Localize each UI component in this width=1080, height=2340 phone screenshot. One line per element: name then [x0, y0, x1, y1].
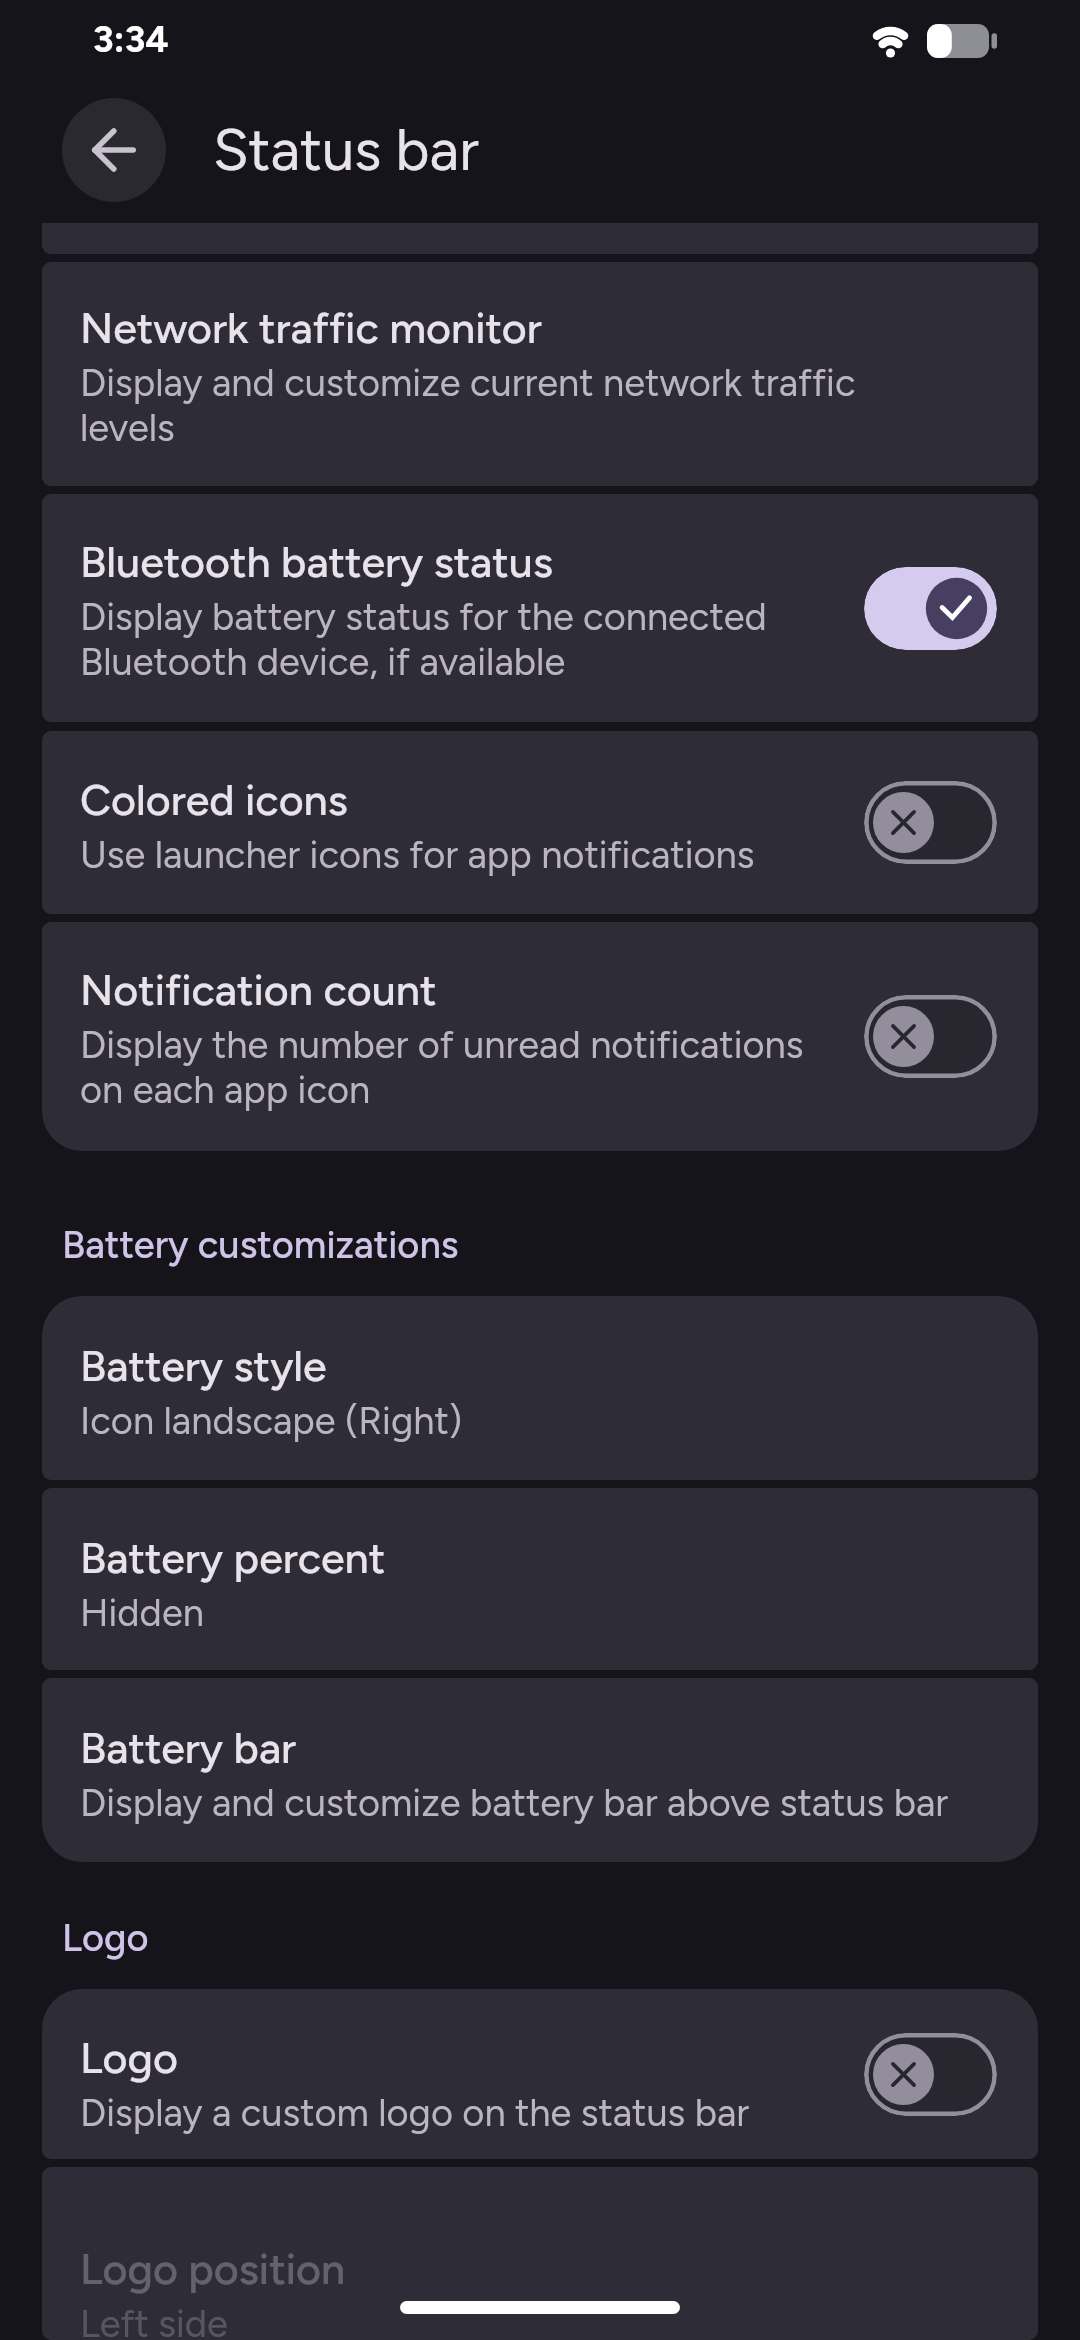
- staticText: Hidden: [80, 1590, 204, 1636]
- staticText: Battery bar: [80, 1722, 297, 1774]
- button[interactable]: Bluetooth battery status: [42, 494, 1038, 722]
- staticText: Bluetooth battery status: [80, 536, 553, 588]
- button[interactable]: Logo: [42, 1989, 1038, 2159]
- button[interactable]: Battery bar: [42, 1678, 1038, 1862]
- staticText: Display a custom logo on the status bar: [80, 2090, 750, 2136]
- staticText: Display and customize current network tr…: [80, 360, 856, 450]
- button[interactable]: Switch off: [864, 2033, 997, 2116]
- staticText: Display and customize battery bar above …: [80, 1780, 949, 1826]
- staticText: Battery customizations: [62, 1222, 459, 1268]
- staticText: Colored icons: [80, 774, 348, 826]
- staticText: Use launcher icons for app notifications: [80, 832, 755, 878]
- button[interactable]: Back: [62, 98, 166, 202]
- staticText: Left side: [80, 2301, 228, 2340]
- staticText: Logo: [62, 1915, 149, 1961]
- button[interactable]: Colored icons: [42, 731, 1038, 914]
- staticText: Icon landscape (Right): [80, 1398, 463, 1444]
- button[interactable]: Switch off: [864, 781, 997, 864]
- staticText: 3:34: [93, 17, 169, 61]
- button[interactable]: Network traffic monitor: [42, 262, 1038, 486]
- button[interactable]: Logo position: [42, 2167, 1038, 2340]
- button[interactable]: Battery style: [42, 1296, 1038, 1480]
- button[interactable]: Switch off: [864, 995, 997, 1078]
- staticText: Display battery status for the connected…: [80, 594, 767, 684]
- staticText: Battery percent: [80, 1532, 386, 1584]
- staticText: Display the number of unread notificatio…: [80, 1022, 804, 1112]
- staticText: Status bar: [213, 115, 479, 185]
- staticText: Logo position: [80, 2243, 346, 2295]
- staticText: Network traffic monitor: [80, 302, 542, 354]
- staticText: Battery style: [80, 1340, 327, 1392]
- staticText: Notification count: [80, 964, 437, 1016]
- staticText: Logo: [80, 2032, 178, 2084]
- button[interactable]: Switch on: [864, 567, 997, 650]
- button[interactable]: Notification count: [42, 922, 1038, 1151]
- button[interactable]: Battery percent: [42, 1488, 1038, 1670]
